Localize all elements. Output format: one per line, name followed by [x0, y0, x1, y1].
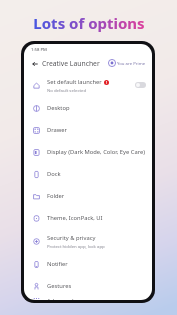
button[interactable]: Desktop [24, 97, 152, 119]
button[interactable]: Drawer [24, 119, 152, 141]
staticText: Protect hidden app, lock app [47, 243, 105, 249]
button[interactable]: Theme, IconPack, UI [24, 207, 152, 229]
button[interactable]: Folder [24, 185, 152, 207]
button[interactable]: Display (Dark Mode, Color, Eye Care) [24, 141, 152, 163]
staticText: Theme, IconPack, UI [47, 214, 103, 222]
staticText: Gestures [47, 282, 72, 290]
staticText: You are Prime [117, 60, 146, 66]
staticText: No default selected [47, 87, 87, 93]
staticText: Set default launcher [47, 78, 102, 86]
staticText: Dock [47, 170, 61, 178]
button[interactable]: Default launcher toggle [135, 82, 146, 88]
staticText: Folder [47, 192, 65, 200]
staticText: Creative Launcher [42, 59, 100, 68]
button[interactable]: Set default launcher [24, 73, 152, 97]
staticText: Notifier [47, 260, 68, 268]
button[interactable]: You are Prime [107, 58, 147, 68]
staticText: Advanced [47, 297, 74, 300]
button[interactable]: Gestures [24, 275, 152, 297]
button[interactable]: Notifier [24, 253, 152, 275]
button[interactable]: Security & privacy [24, 229, 152, 253]
staticText: Desktop [47, 104, 70, 112]
button[interactable]: Dock [24, 163, 152, 185]
staticText: 1:58 PM [31, 47, 47, 53]
staticText: Security & privacy [47, 234, 96, 242]
staticText: Lots of options [33, 13, 145, 33]
button[interactable]: Back [29, 58, 40, 69]
button[interactable]: Advanced [24, 297, 152, 300]
staticText: Drawer [47, 126, 67, 134]
staticText: ! [106, 80, 107, 85]
staticText: Display (Dark Mode, Color, Eye Care) [47, 148, 146, 156]
